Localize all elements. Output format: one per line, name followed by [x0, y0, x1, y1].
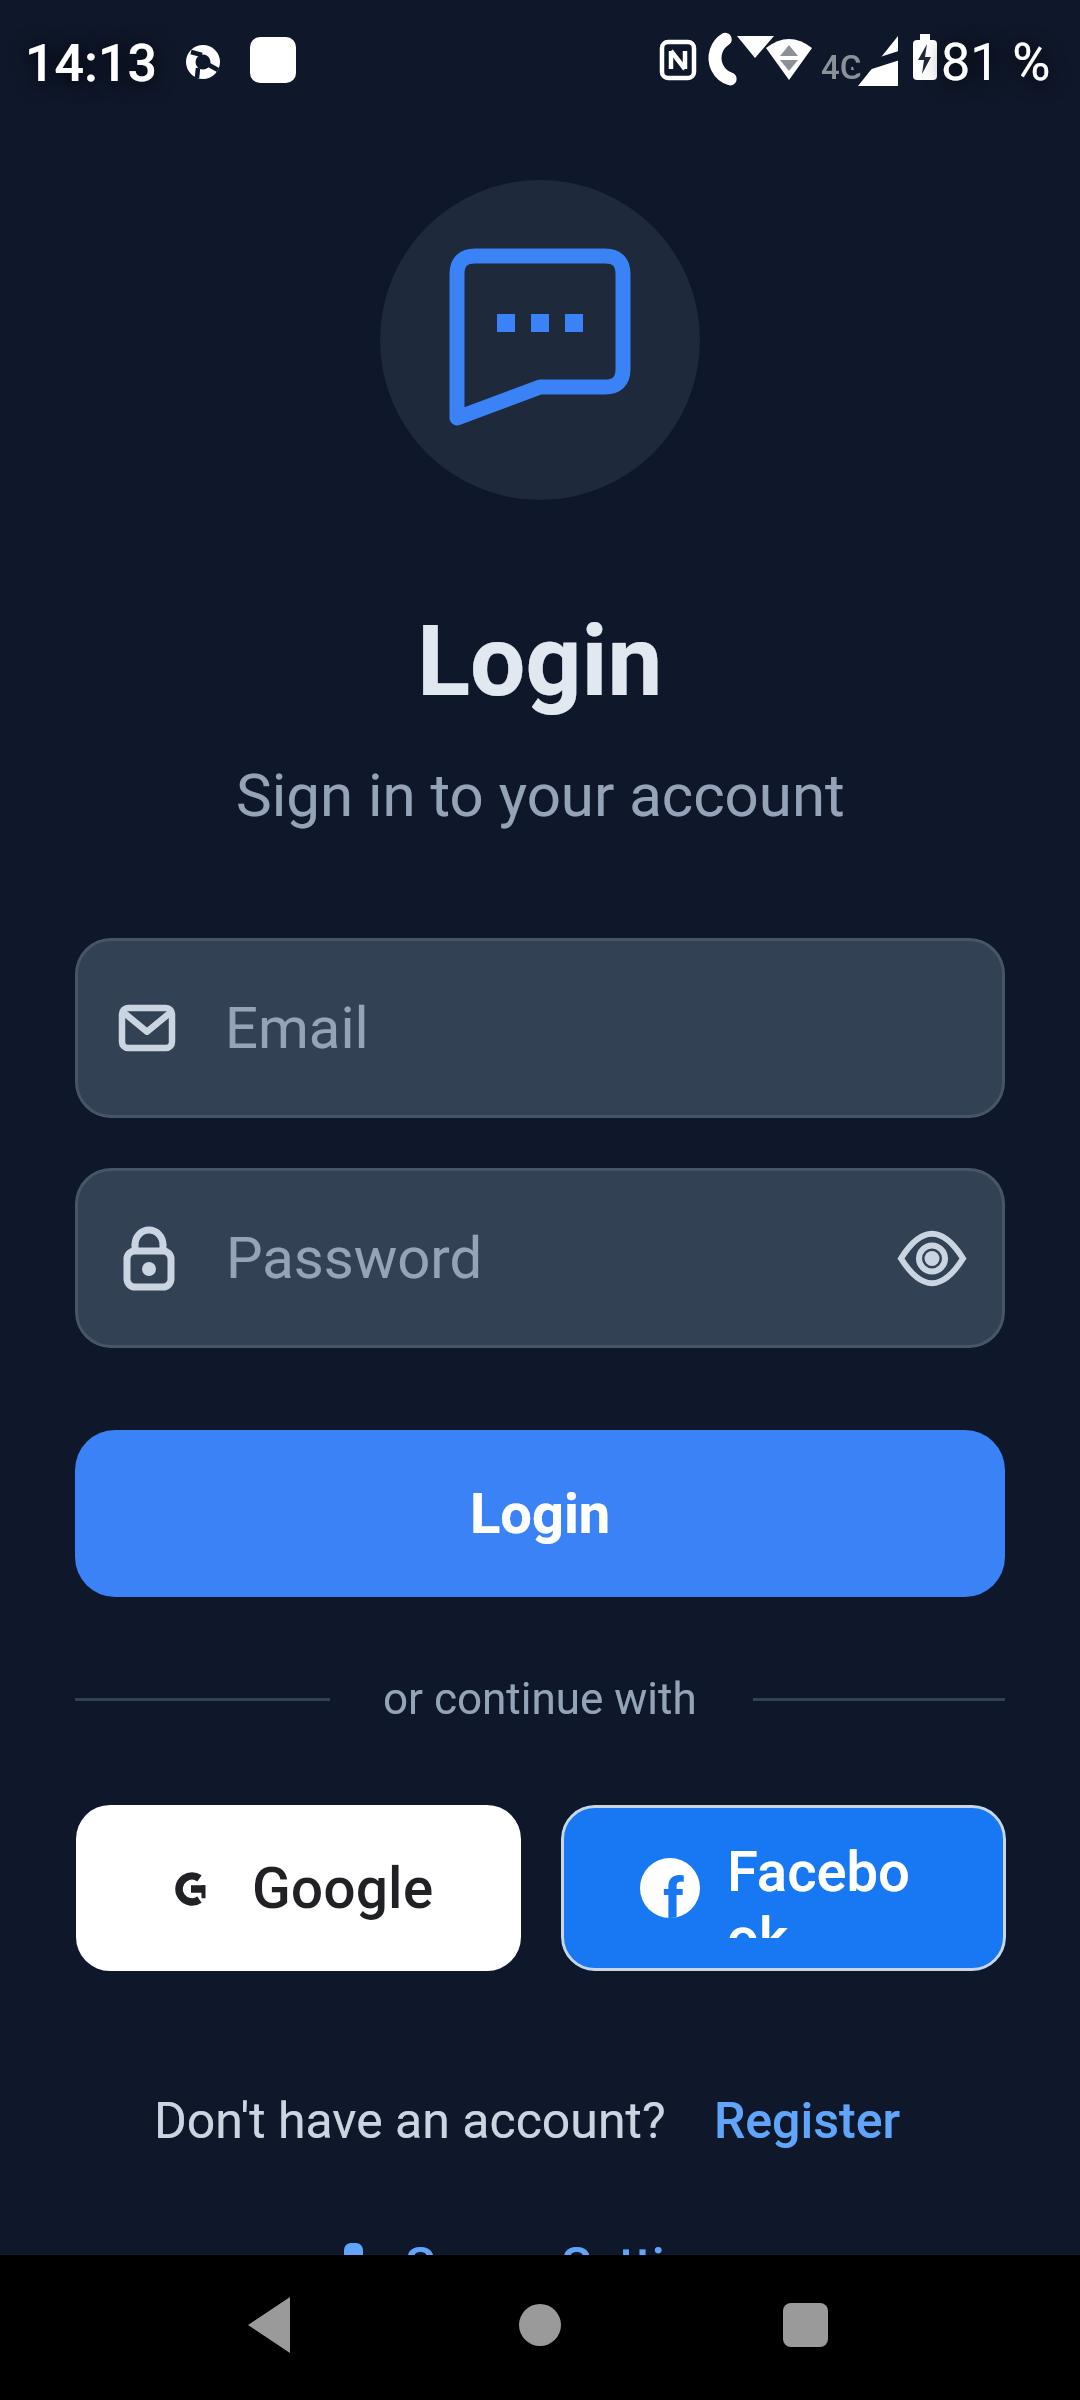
- staticText: Google: [252, 1855, 434, 1922]
- staticText: Don't have an account?: [154, 2092, 666, 2151]
- button[interactable]: Login: [75, 1430, 1005, 1597]
- button[interactable]: [898, 1235, 966, 1282]
- staticText: Facebo: [727, 1839, 910, 1905]
- staticText: ok: [727, 1905, 789, 1938]
- button[interactable]: Password: [75, 1168, 1005, 1348]
- staticText: Server Settings: [405, 2237, 747, 2296]
- button[interactable]: [519, 2304, 561, 2346]
- staticText: or continue with: [383, 1673, 697, 1725]
- staticText: Register: [714, 2092, 901, 2151]
- button[interactable]: Email: [75, 938, 1005, 1118]
- button[interactable]: Server Settings: [405, 2237, 747, 2296]
- staticText: 14:13: [25, 33, 158, 94]
- staticText: Email: [225, 994, 369, 1062]
- staticText: Login: [417, 604, 663, 719]
- staticText: 81 %: [941, 32, 1051, 93]
- button[interactable]: [248, 2297, 290, 2353]
- staticText: 4G: [821, 48, 863, 87]
- staticText: Password: [226, 1224, 483, 1292]
- staticText: Sign in to your account: [236, 760, 845, 830]
- button[interactable]: Google: [76, 1805, 521, 1971]
- button[interactable]: Register: [714, 2092, 901, 2151]
- staticText: Login: [470, 1481, 611, 1547]
- button[interactable]: [783, 2303, 828, 2347]
- button[interactable]: f: [561, 1805, 1006, 1971]
- staticText: f: [663, 1865, 684, 1918]
